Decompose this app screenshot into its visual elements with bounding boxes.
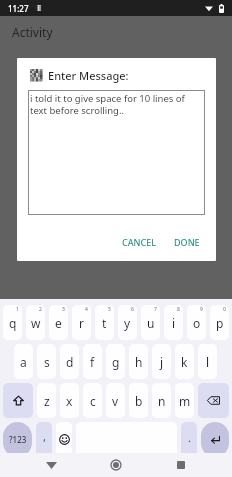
button[interactable]: i bbox=[164, 305, 183, 340]
button[interactable]: z bbox=[37, 383, 56, 418]
button[interactable]: w bbox=[26, 305, 45, 340]
staticText: t bbox=[102, 315, 107, 331]
staticText: c bbox=[90, 393, 96, 409]
staticText: 7 bbox=[154, 306, 157, 313]
button[interactable]: o bbox=[187, 305, 206, 340]
button[interactable]: s bbox=[37, 344, 56, 379]
button[interactable]: Recents bbox=[167, 453, 195, 477]
button[interactable]: Home bbox=[102, 453, 130, 477]
staticText: Enter Message: bbox=[48, 68, 129, 83]
button[interactable]: i told it to give space for 10 lines of … bbox=[28, 90, 205, 215]
staticText: r bbox=[79, 315, 84, 331]
staticText: 11:27 bbox=[8, 3, 29, 14]
staticText: p bbox=[216, 315, 224, 331]
staticText: m bbox=[179, 393, 191, 409]
staticText: l bbox=[206, 354, 210, 370]
staticText: i bbox=[172, 315, 176, 331]
button[interactable]: e bbox=[49, 305, 68, 340]
staticText: u bbox=[147, 315, 155, 331]
staticText: . bbox=[188, 430, 191, 445]
button[interactable]: Shift bbox=[3, 383, 33, 418]
button[interactable]: Emoji bbox=[56, 422, 72, 457]
staticText: Activity bbox=[12, 24, 53, 40]
button[interactable]: Backspace bbox=[198, 383, 229, 418]
button[interactable]: p bbox=[210, 305, 229, 340]
staticText: 5 bbox=[108, 306, 111, 313]
staticText: f bbox=[90, 354, 95, 370]
button[interactable]: n bbox=[152, 383, 171, 418]
button[interactable]: f bbox=[83, 344, 102, 379]
button[interactable]: , bbox=[36, 422, 52, 457]
button[interactable]: CANCEL bbox=[117, 232, 162, 252]
button[interactable]: Back bbox=[37, 453, 65, 477]
staticText: g bbox=[112, 354, 120, 370]
button[interactable]: g bbox=[106, 344, 125, 379]
staticText: y bbox=[124, 315, 131, 331]
button[interactable]: d bbox=[60, 344, 79, 379]
staticText: e bbox=[55, 315, 62, 331]
staticText: 2 bbox=[39, 306, 42, 313]
staticText: v bbox=[112, 393, 119, 409]
staticText: s bbox=[44, 354, 50, 370]
staticText: d bbox=[66, 354, 74, 370]
button[interactable]: c bbox=[83, 383, 102, 418]
staticText: w bbox=[31, 315, 41, 331]
button[interactable]: r bbox=[72, 305, 91, 340]
staticText: q bbox=[9, 315, 17, 331]
button[interactable]: y bbox=[118, 305, 137, 340]
button[interactable]: u bbox=[141, 305, 160, 340]
button[interactable]: t bbox=[95, 305, 114, 340]
staticText: a bbox=[20, 354, 27, 370]
staticText: 8 bbox=[177, 306, 180, 313]
staticText: 1 bbox=[16, 306, 19, 313]
staticText: h bbox=[135, 354, 143, 370]
staticText: 4 bbox=[85, 306, 88, 313]
staticText: z bbox=[44, 393, 50, 409]
staticText: o bbox=[193, 315, 201, 331]
button[interactable]: DONE bbox=[169, 232, 205, 252]
button[interactable]: a bbox=[14, 344, 33, 379]
staticText: n bbox=[158, 393, 166, 409]
button[interactable]: ?123 bbox=[3, 422, 32, 457]
staticText: CANCEL bbox=[122, 236, 157, 248]
staticText: k bbox=[181, 354, 188, 370]
staticText: ?123 bbox=[9, 434, 27, 445]
staticText: x bbox=[66, 393, 73, 409]
button[interactable]: m bbox=[175, 383, 194, 418]
button[interactable]: x bbox=[60, 383, 79, 418]
staticText: 3 bbox=[62, 306, 65, 313]
staticText: b bbox=[135, 393, 143, 409]
button[interactable]: j bbox=[152, 344, 171, 379]
button[interactable]: v bbox=[106, 383, 125, 418]
staticText: 9 bbox=[200, 306, 203, 313]
button[interactable]: . bbox=[181, 422, 197, 457]
button[interactable]: b bbox=[129, 383, 148, 418]
button[interactable]: q bbox=[3, 305, 22, 340]
button[interactable]: l bbox=[198, 344, 217, 379]
staticText: , bbox=[43, 429, 46, 444]
staticText: j bbox=[160, 354, 164, 370]
button[interactable]: h bbox=[129, 344, 148, 379]
staticText: 6 bbox=[131, 306, 134, 313]
button[interactable]: k bbox=[175, 344, 194, 379]
button[interactable]: Space bbox=[76, 422, 177, 457]
staticText: DONE bbox=[174, 236, 200, 248]
staticText: i told it to give space for 10 lines of … bbox=[30, 92, 203, 117]
button[interactable]: Enter bbox=[201, 422, 229, 457]
staticText: 0 bbox=[223, 306, 226, 313]
